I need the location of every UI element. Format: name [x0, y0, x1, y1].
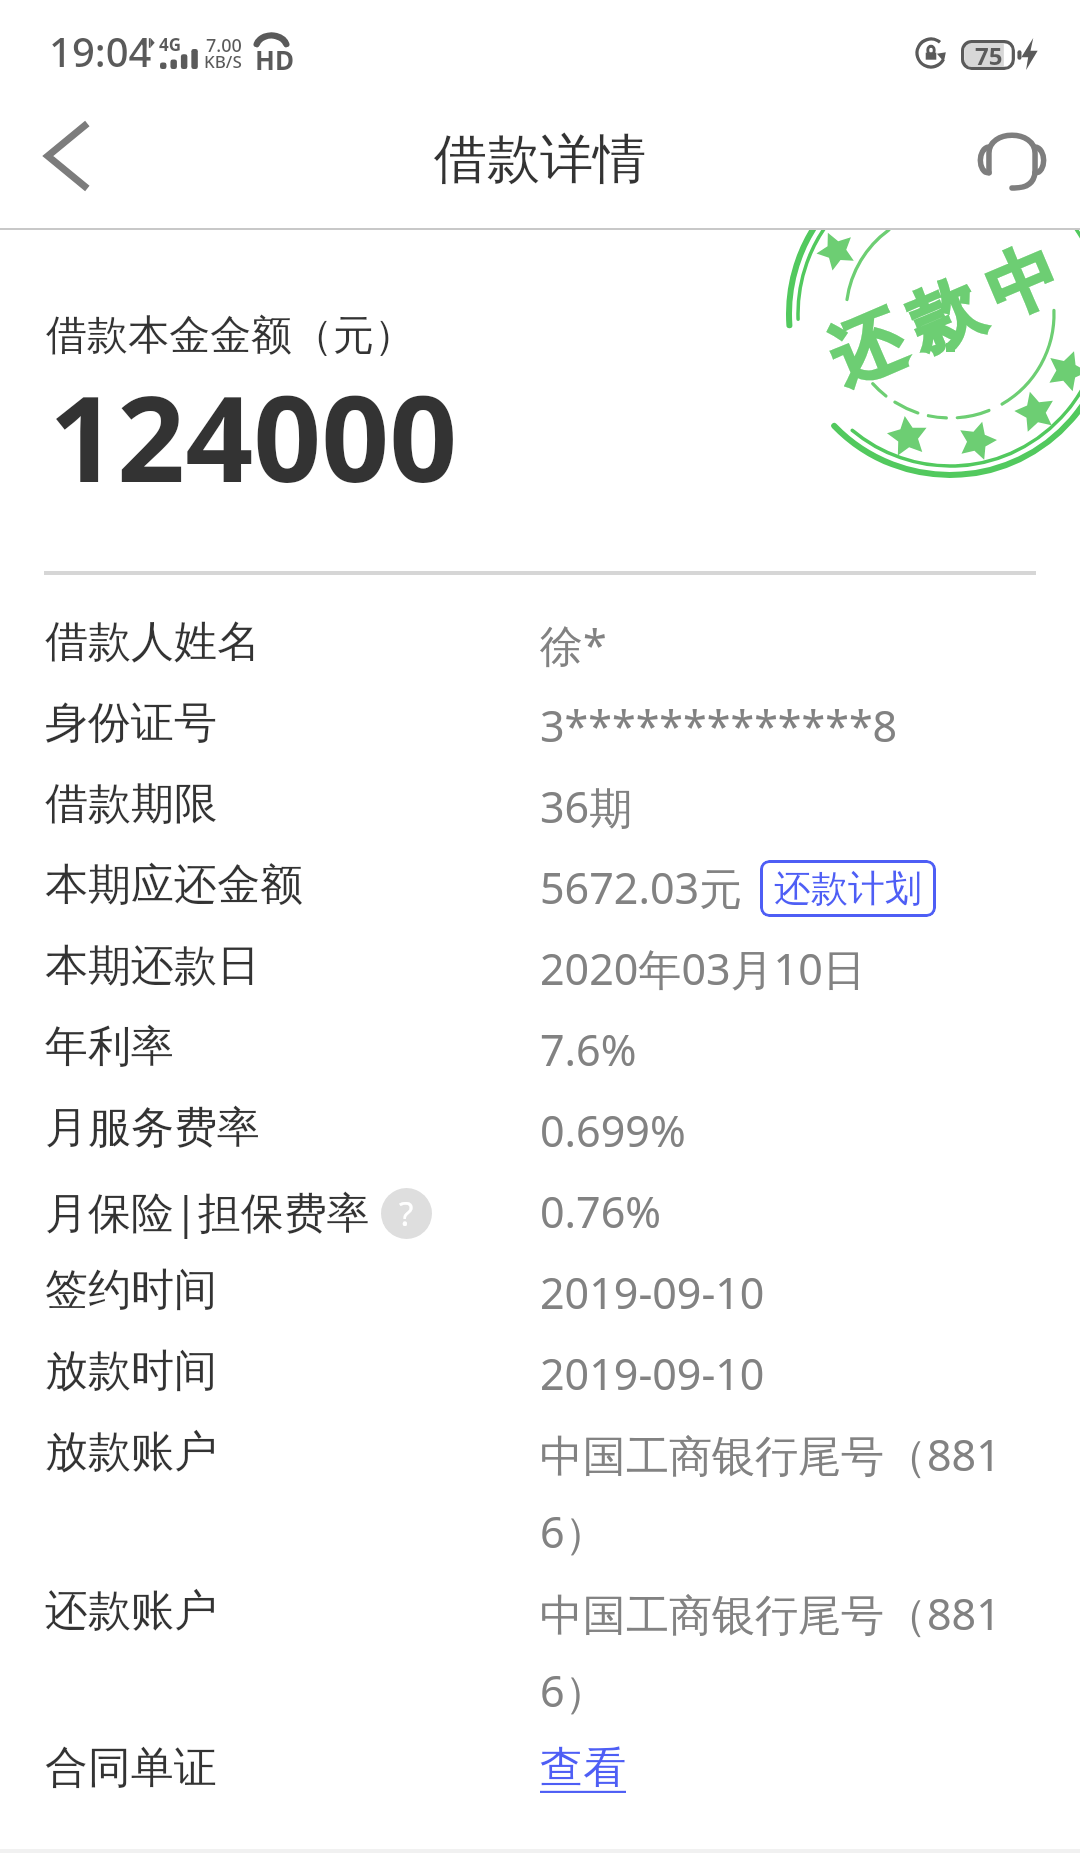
button[interactable]: Help: [381, 1188, 432, 1239]
staticText: 借款本金金额（元）: [46, 310, 415, 362]
button[interactable]: 年利率: [0, 1004, 1080, 1085]
staticText: 124000: [49, 355, 458, 517]
button[interactable]: 借款人姓名: [0, 599, 1080, 680]
button[interactable]: 合同单证: [0, 1725, 1080, 1806]
staticText: 合同单证: [45, 1741, 217, 1795]
staticText: ?: [399, 1191, 414, 1236]
button[interactable]: 还款账户: [0, 1568, 1080, 1727]
staticText: 7.6%: [540, 1020, 637, 1079]
staticText: 放款账户: [45, 1425, 217, 1479]
staticText: 月保险|担保费率: [45, 1182, 370, 1241]
staticText: 36期: [540, 777, 633, 836]
button[interactable]: 身份证号: [0, 680, 1080, 761]
staticText: 4G: [159, 33, 182, 56]
button[interactable]: 月服务费率: [0, 1085, 1080, 1166]
staticText: KB/S: [204, 50, 242, 73]
button[interactable]: Back: [18, 112, 118, 212]
staticText: 查看: [540, 1741, 626, 1795]
staticText: 中国工商银行尾号（881 6）: [540, 1584, 1001, 1720]
staticText: 徐*: [540, 615, 607, 674]
staticText: 0.76%: [540, 1182, 662, 1241]
button[interactable]: 本期还款日: [0, 923, 1080, 1004]
staticText: 年利率: [45, 1020, 174, 1074]
staticText: 本期还款日: [45, 939, 260, 993]
staticText: 月服务费率: [45, 1101, 260, 1155]
staticText: 借款详情: [434, 126, 646, 193]
staticText: 2019-09-10: [540, 1263, 765, 1322]
staticText: 还款中: [810, 229, 1079, 406]
button[interactable]: 放款账户: [0, 1409, 1080, 1568]
staticText: 借款期限: [45, 777, 217, 831]
staticText: 放款时间: [45, 1344, 217, 1398]
staticText: 还款计划: [774, 865, 922, 912]
staticText: 75: [975, 39, 1003, 69]
staticText: 2019-09-10: [540, 1344, 765, 1403]
button[interactable]: 签约时间: [0, 1247, 1080, 1328]
staticText: 2020年03月10日: [540, 939, 866, 998]
staticText: 中国工商银行尾号（881 6）: [540, 1425, 1001, 1561]
button[interactable]: 月保险|担保费率: [0, 1166, 1080, 1247]
staticText: HD: [255, 42, 294, 77]
staticText: 19:04: [49, 24, 152, 78]
button[interactable]: 放款时间: [0, 1328, 1080, 1409]
staticText: 签约时间: [45, 1263, 217, 1317]
staticText: 0.699%: [540, 1101, 686, 1160]
staticText: 5672.03元: [540, 858, 743, 917]
staticText: 借款人姓名: [45, 615, 260, 669]
button[interactable]: 本期应还金额: [0, 842, 1080, 923]
staticText: 7.00: [206, 33, 242, 58]
staticText: 身份证号: [45, 696, 217, 750]
staticText: 还款账户: [45, 1584, 217, 1638]
staticText: 本期应还金额: [45, 858, 303, 912]
button[interactable]: Customer service: [962, 112, 1062, 212]
button[interactable]: 借款期限: [0, 761, 1080, 842]
button[interactable]: 还款计划: [760, 860, 936, 917]
staticText: 3*************8: [540, 696, 898, 755]
